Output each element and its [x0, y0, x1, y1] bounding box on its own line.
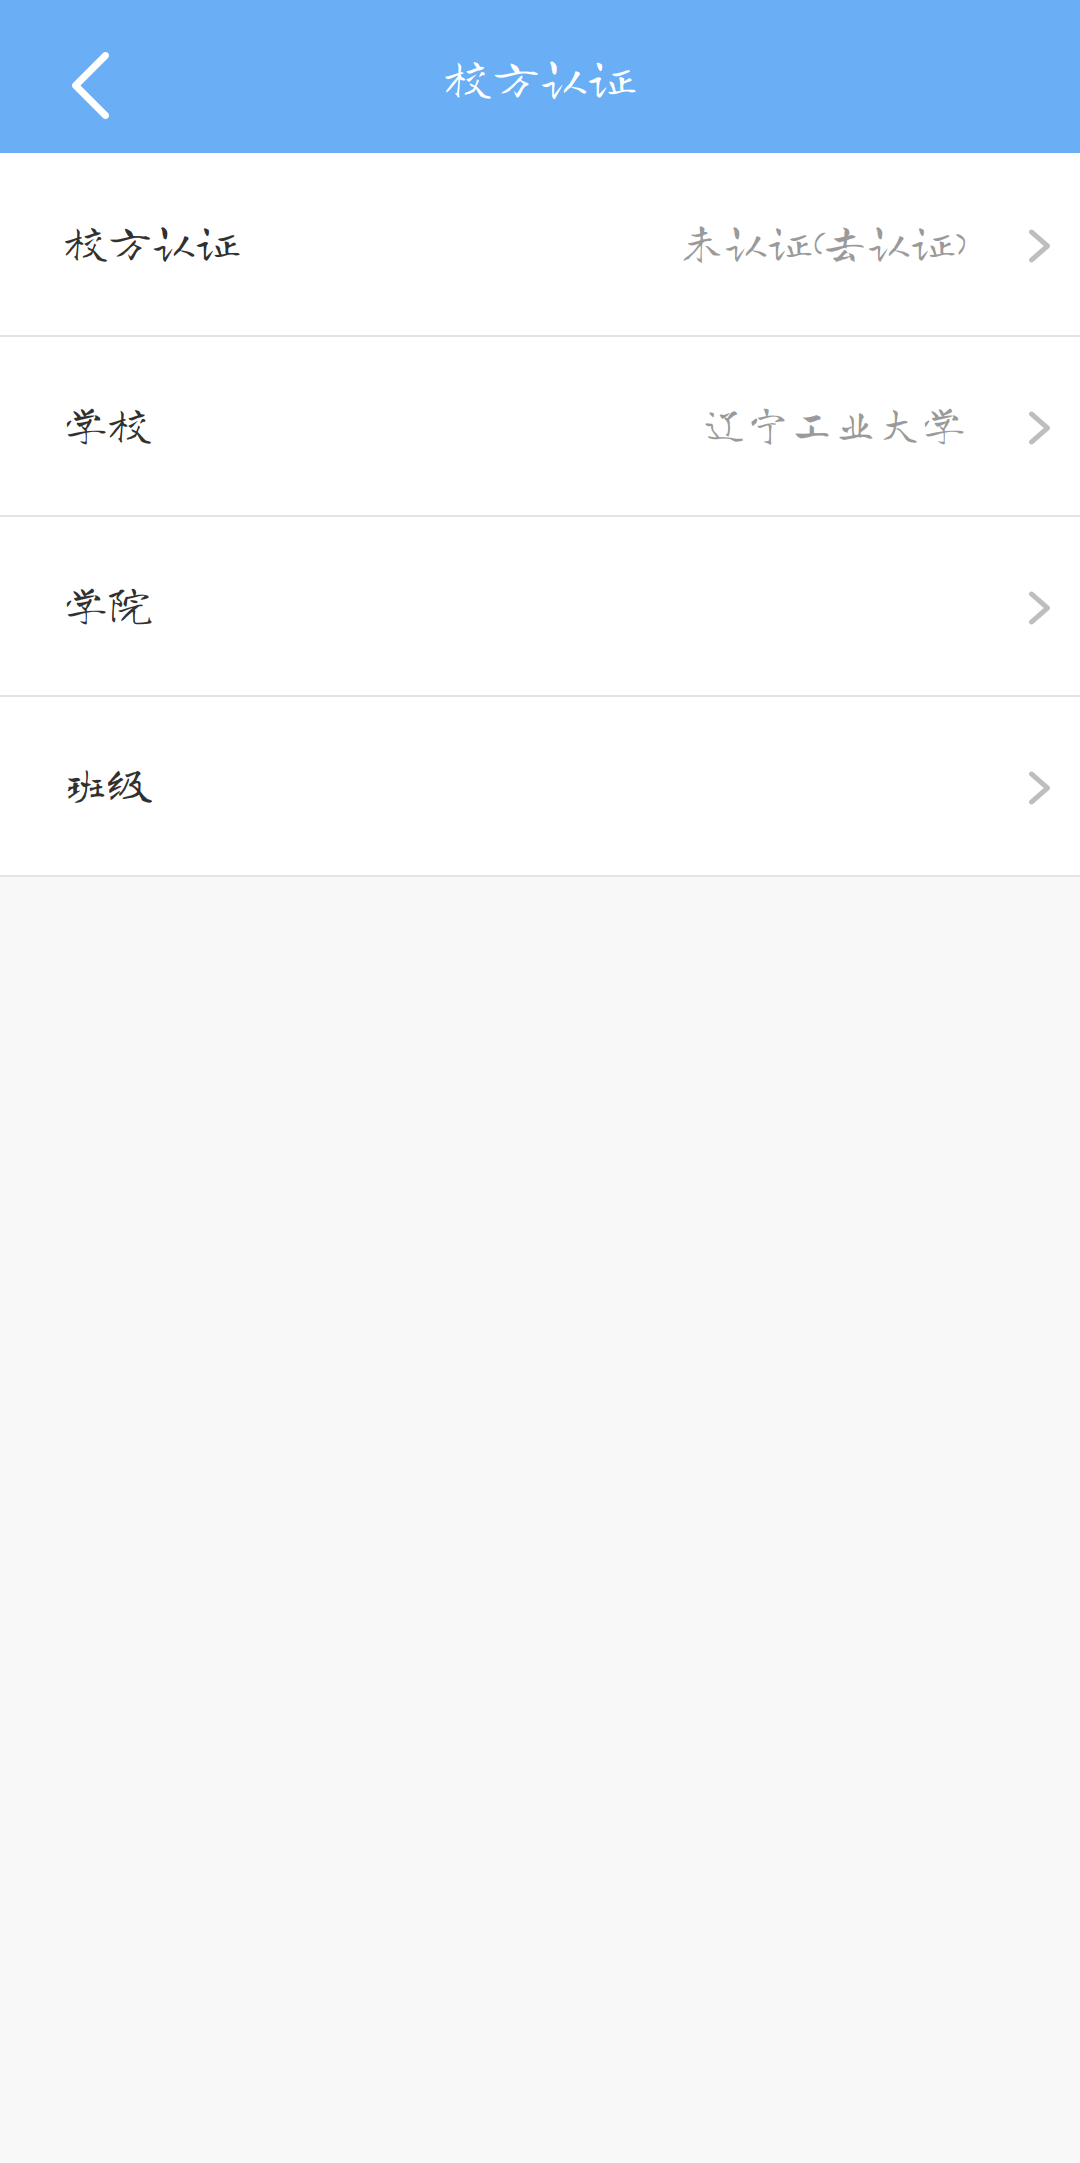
staticText: 校方认证 [444, 52, 636, 100]
button[interactable]: 学院 [0, 517, 1080, 695]
button[interactable]: 班级 [0, 697, 1080, 875]
staticText: 校方认证 [64, 219, 240, 263]
button[interactable]: 校方认证 [0, 153, 1080, 335]
button[interactable]: Back [0, 0, 139, 153]
staticText: 学校 [64, 401, 152, 445]
staticText: 班级 [64, 761, 152, 805]
staticText: 未认证(去认证) [680, 219, 966, 263]
staticText: 学院 [64, 581, 152, 625]
staticText: 辽宁工业大学 [702, 401, 966, 445]
button[interactable]: 学校 [0, 337, 1080, 515]
